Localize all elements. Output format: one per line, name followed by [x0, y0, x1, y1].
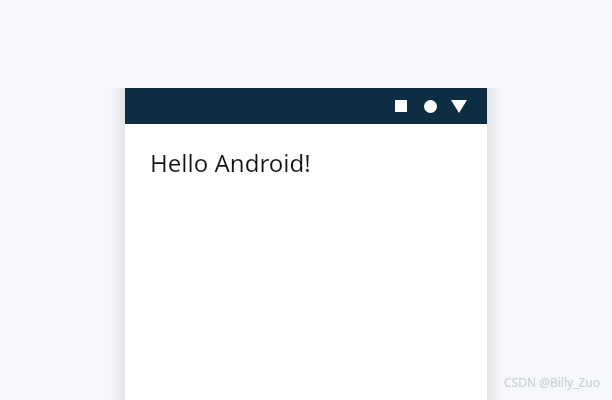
button[interactable]: Home: [418, 94, 442, 118]
button[interactable]: Recent apps: [389, 94, 413, 118]
button[interactable]: Back: [447, 94, 471, 118]
staticText: CSDN @Billy_Zuo: [503, 374, 600, 390]
staticText: Hello Android!: [150, 146, 311, 179]
